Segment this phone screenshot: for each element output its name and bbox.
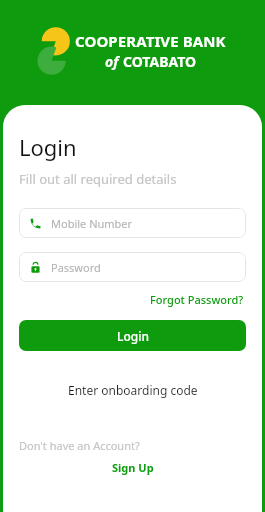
staticText: Fill out all required details [19,170,177,188]
staticText: Login [117,328,149,344]
other: Mobile number [29,217,42,230]
button[interactable]: Password [19,252,246,282]
staticText: Mobile Number [51,216,133,231]
staticText: COOPERATIVE BANK [75,31,226,51]
button[interactable]: Sign Up [106,458,160,477]
button[interactable]: Forgot Password? [148,290,246,309]
button[interactable]: Login [19,320,246,351]
staticText: Forgot Password? [150,292,244,307]
staticText: Login [19,132,77,162]
button[interactable]: Enter onboarding code [64,378,202,402]
staticText: COTABATO [123,52,197,71]
staticText: Enter onboarding code [68,382,198,398]
staticText: Sign Up [112,460,154,475]
staticText: of [105,52,123,71]
staticText: Password [51,260,101,275]
other: Password [29,261,42,274]
button[interactable]: Mobile number [19,208,246,238]
staticText: Don't have an Account? [19,438,246,453]
